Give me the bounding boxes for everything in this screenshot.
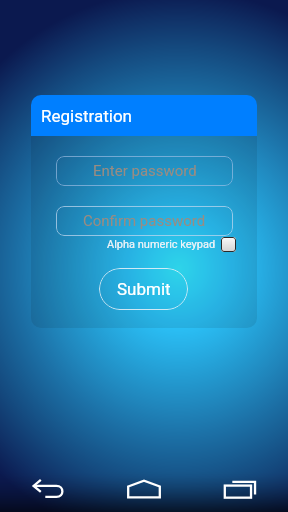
- staticText: Submit: [117, 279, 171, 299]
- button[interactable]: Confirm password: [56, 206, 233, 236]
- button[interactable]: Back: [0, 466, 96, 512]
- button[interactable]: Home: [96, 466, 192, 512]
- button[interactable]: Enter password: [56, 156, 233, 186]
- staticText: Enter password: [93, 162, 197, 180]
- other: Alpha numeric keypad: [221, 237, 236, 252]
- button[interactable]: Submit: [99, 268, 188, 310]
- staticText: Confirm password: [83, 212, 206, 230]
- staticText: Registration: [41, 106, 132, 126]
- button[interactable]: Alpha numeric keypad: [107, 235, 236, 253]
- staticText: Alpha numeric keypad: [107, 238, 216, 251]
- button[interactable]: Recent apps: [192, 466, 288, 512]
